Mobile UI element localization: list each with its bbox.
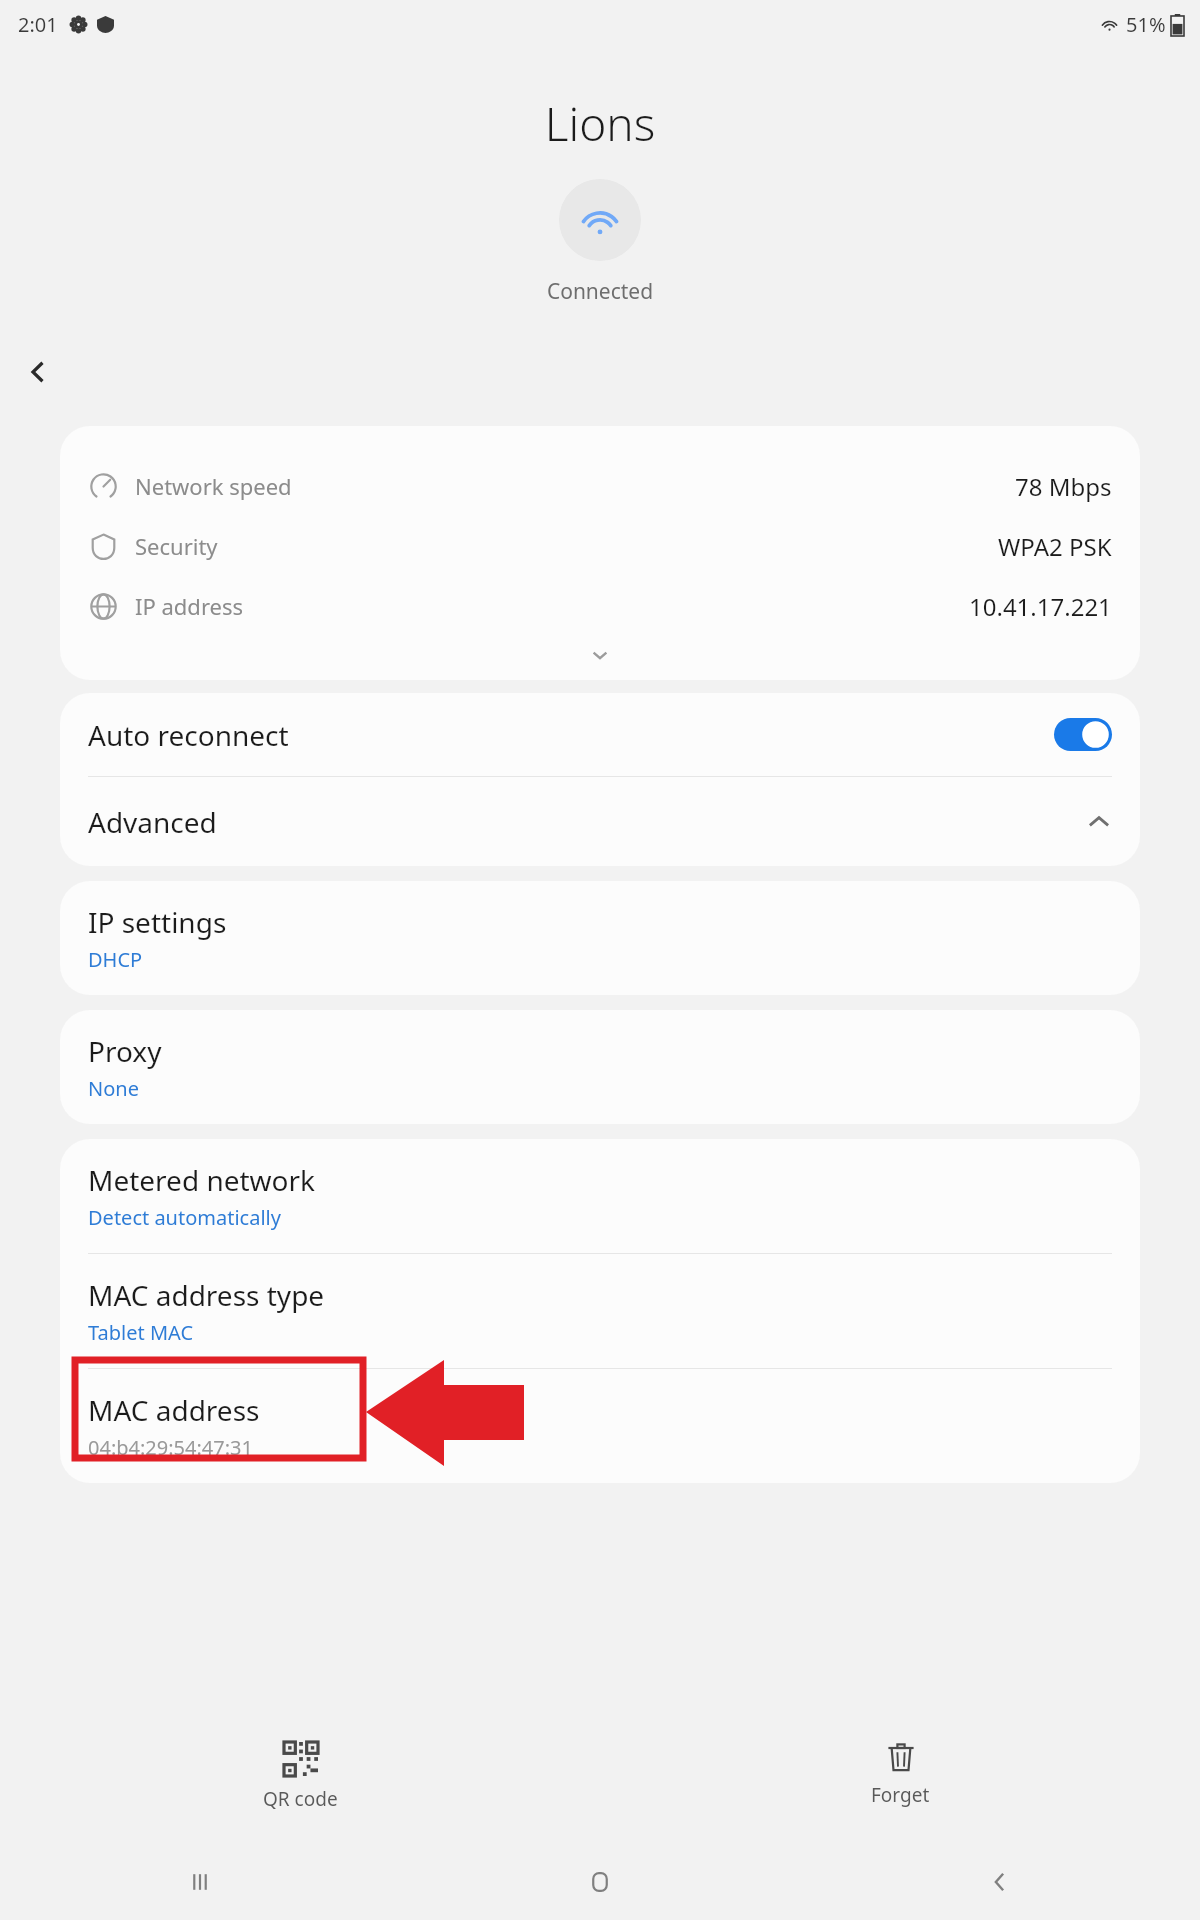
- staticText: None: [88, 1075, 139, 1102]
- other: Wi-Fi connected: [559, 179, 641, 261]
- button[interactable]: Back: [14, 348, 62, 396]
- staticText: MAC address: [88, 1391, 260, 1429]
- button[interactable]: Home: [400, 1844, 800, 1920]
- staticText: Network speed: [135, 471, 292, 501]
- button[interactable]: Security: [60, 516, 1140, 576]
- button[interactable]: Network speed: [60, 456, 1140, 516]
- button[interactable]: Metered network: [60, 1139, 1140, 1253]
- staticText: 51%: [1126, 11, 1166, 38]
- staticText: Lions: [0, 92, 1200, 155]
- button[interactable]: Advanced: [60, 777, 1140, 866]
- staticText: Security: [135, 531, 218, 561]
- staticText: QR code: [263, 1786, 338, 1812]
- button[interactable]: MAC address: [60, 1369, 1140, 1483]
- button[interactable]: MAC address type: [60, 1254, 1140, 1368]
- button[interactable]: IP address: [60, 576, 1140, 636]
- staticText: Metered network: [88, 1161, 316, 1199]
- staticText: 2:01: [18, 11, 58, 38]
- button[interactable]: Forget: [851, 1734, 950, 1816]
- button[interactable]: Auto reconnect: [60, 693, 1140, 776]
- staticText: IP address: [135, 591, 244, 621]
- staticText: WPA2 PSK: [998, 530, 1112, 563]
- staticText: Tablet MAC: [88, 1319, 194, 1346]
- staticText: Proxy: [88, 1032, 162, 1070]
- button[interactable]: QR code: [243, 1734, 358, 1820]
- button[interactable]: IP settings: [60, 881, 1140, 995]
- staticText: Connected: [0, 277, 1200, 306]
- staticText: Auto reconnect: [88, 716, 289, 754]
- button[interactable]: Back: [800, 1844, 1200, 1920]
- staticText: 10.41.17.221: [969, 590, 1112, 623]
- staticText: MAC address type: [88, 1276, 325, 1314]
- staticText: Detect automatically: [88, 1204, 281, 1231]
- staticText: DHCP: [88, 946, 143, 973]
- button[interactable]: Recents: [0, 1844, 400, 1920]
- staticText: 78 Mbps: [1015, 470, 1112, 503]
- staticText: Advanced: [88, 803, 217, 841]
- staticText: Forget: [871, 1782, 930, 1808]
- staticText: 04:b4:29:54:47:31: [88, 1434, 253, 1461]
- button[interactable]: Proxy: [60, 1010, 1140, 1124]
- staticText: IP settings: [88, 903, 227, 941]
